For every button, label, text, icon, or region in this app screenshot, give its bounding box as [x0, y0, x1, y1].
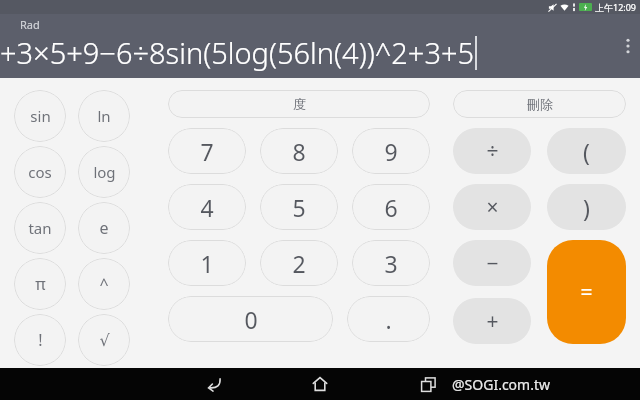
button[interactable]: 2 — [260, 240, 338, 286]
button[interactable]: More options — [616, 14, 640, 78]
staticText: cos — [28, 162, 52, 182]
button[interactable]: − — [453, 240, 531, 286]
staticText: + — [486, 307, 499, 336]
staticText: . — [385, 304, 392, 335]
staticText: 3 — [384, 248, 398, 279]
staticText: = — [580, 278, 593, 307]
button[interactable]: Home — [296, 368, 344, 400]
staticText: 度 — [293, 96, 306, 112]
staticText: 4 — [200, 192, 214, 223]
staticText: +3×5+9−6÷8sin(5log(56ln(4))^2+3+5 — [0, 33, 475, 72]
button[interactable]: ln — [78, 90, 130, 142]
staticText: 9 — [384, 136, 398, 167]
button[interactable]: ! — [14, 314, 66, 366]
button[interactable]: = — [547, 240, 626, 344]
button[interactable]: 3 — [352, 240, 430, 286]
staticText: 8 — [292, 136, 306, 167]
button[interactable]: × — [453, 184, 531, 230]
button[interactable]: ( — [547, 128, 626, 174]
staticText: 0 — [244, 304, 258, 335]
staticText: − — [486, 249, 499, 278]
staticText: e — [99, 217, 109, 239]
button[interactable]: sin — [14, 90, 66, 142]
button[interactable]: log — [78, 146, 130, 198]
button[interactable]: tan — [14, 202, 66, 254]
button[interactable]: ÷ — [453, 128, 531, 174]
button[interactable]: cos — [14, 146, 66, 198]
button[interactable]: ^ — [78, 258, 130, 310]
staticText: √ — [99, 331, 110, 350]
button[interactable]: 6 — [352, 184, 430, 230]
button[interactable]: . — [347, 296, 430, 342]
button[interactable]: 9 — [352, 128, 430, 174]
button[interactable]: + — [453, 298, 531, 344]
staticText: 5 — [292, 192, 306, 223]
staticText: ) — [583, 192, 590, 223]
staticText: ÷ — [486, 137, 499, 166]
button[interactable]: 4 — [168, 184, 246, 230]
button[interactable]: 度 — [168, 90, 430, 118]
button[interactable]: π — [14, 258, 66, 310]
staticText: ^ — [99, 273, 109, 295]
staticText: 2 — [292, 248, 306, 279]
staticText: × — [486, 193, 499, 222]
staticText: 7 — [200, 136, 214, 167]
staticText: 1 — [200, 248, 214, 279]
staticText: ! — [38, 329, 43, 351]
staticText: log — [93, 162, 116, 182]
button[interactable]: Recent apps — [404, 368, 452, 400]
button[interactable]: 1 — [168, 240, 246, 286]
staticText: 6 — [384, 192, 398, 223]
button[interactable]: 5 — [260, 184, 338, 230]
button[interactable]: 刪除 — [453, 90, 626, 118]
staticText: Rad — [20, 17, 40, 32]
button[interactable]: 0 — [168, 296, 333, 342]
button[interactable]: ) — [547, 184, 626, 230]
staticText: 刪除 — [527, 96, 553, 112]
staticText: @SOGI.com.tw — [452, 375, 550, 394]
button[interactable]: e — [78, 202, 130, 254]
staticText: tan — [28, 218, 52, 238]
button[interactable]: √ — [78, 314, 130, 366]
staticText: sin — [30, 106, 51, 126]
button[interactable]: 7 — [168, 128, 246, 174]
button[interactable]: Back — [190, 368, 238, 400]
staticText: π — [35, 273, 46, 295]
staticText: 上午12:09 — [595, 1, 637, 13]
button[interactable]: 8 — [260, 128, 338, 174]
staticText: ln — [97, 106, 111, 126]
staticText: ( — [583, 136, 590, 167]
